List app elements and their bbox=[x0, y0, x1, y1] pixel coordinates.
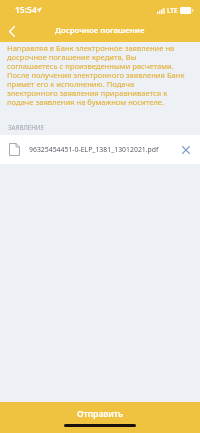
staticText: LTE bbox=[167, 6, 178, 15]
button[interactable]: 96325454451-0-ELP_1381_13012021.pdf bbox=[0, 135, 200, 164]
button[interactable]: Отправить bbox=[0, 402, 200, 433]
button[interactable]: Back bbox=[1, 20, 23, 42]
staticText: Направляя в Банк электронное заявление н… bbox=[7, 43, 185, 107]
staticText: Отправить bbox=[77, 408, 123, 420]
staticText: 15:54 bbox=[15, 4, 37, 16]
staticText: 96325454451-0-ELP_1381_13012021.pdf bbox=[29, 145, 159, 154]
staticText: Досрочное погашение bbox=[55, 25, 145, 36]
button[interactable]: Remove attachment bbox=[173, 137, 199, 163]
staticText: ЗАЯВЛЕНИЕ bbox=[8, 123, 44, 131]
